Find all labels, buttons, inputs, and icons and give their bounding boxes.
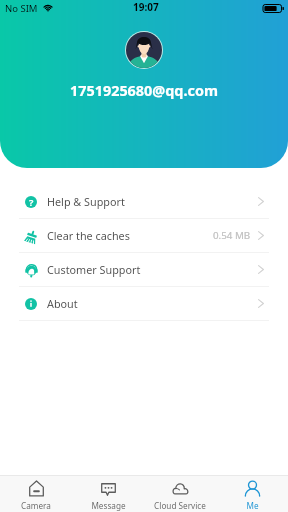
staticText: Me [246, 500, 259, 511]
staticText: 19:07 [133, 0, 159, 14]
button[interactable]: ? [0, 185, 288, 218]
staticText: Cloud Service [154, 500, 206, 511]
staticText: ? [29, 196, 34, 208]
staticText: Camera [21, 500, 51, 511]
button[interactable]: Customer Support [0, 253, 288, 286]
button[interactable]: Me [216, 476, 288, 512]
staticText: No SIM [5, 2, 38, 15]
button[interactable]: Message [72, 476, 144, 512]
staticText: Clear the caches [47, 228, 130, 243]
staticText: Help & Support [47, 194, 125, 209]
staticText: Message [91, 500, 126, 511]
staticText: 1751925680@qq.com [70, 81, 218, 101]
staticText: About [47, 296, 78, 311]
staticText: Customer Support [47, 262, 141, 277]
button[interactable]: Camera [0, 476, 72, 512]
button[interactable]: Cloud Service [144, 476, 216, 512]
button[interactable]: Clear the caches [0, 219, 288, 252]
staticText: 0.54 MB [213, 229, 251, 242]
button[interactable]: About [0, 287, 288, 320]
